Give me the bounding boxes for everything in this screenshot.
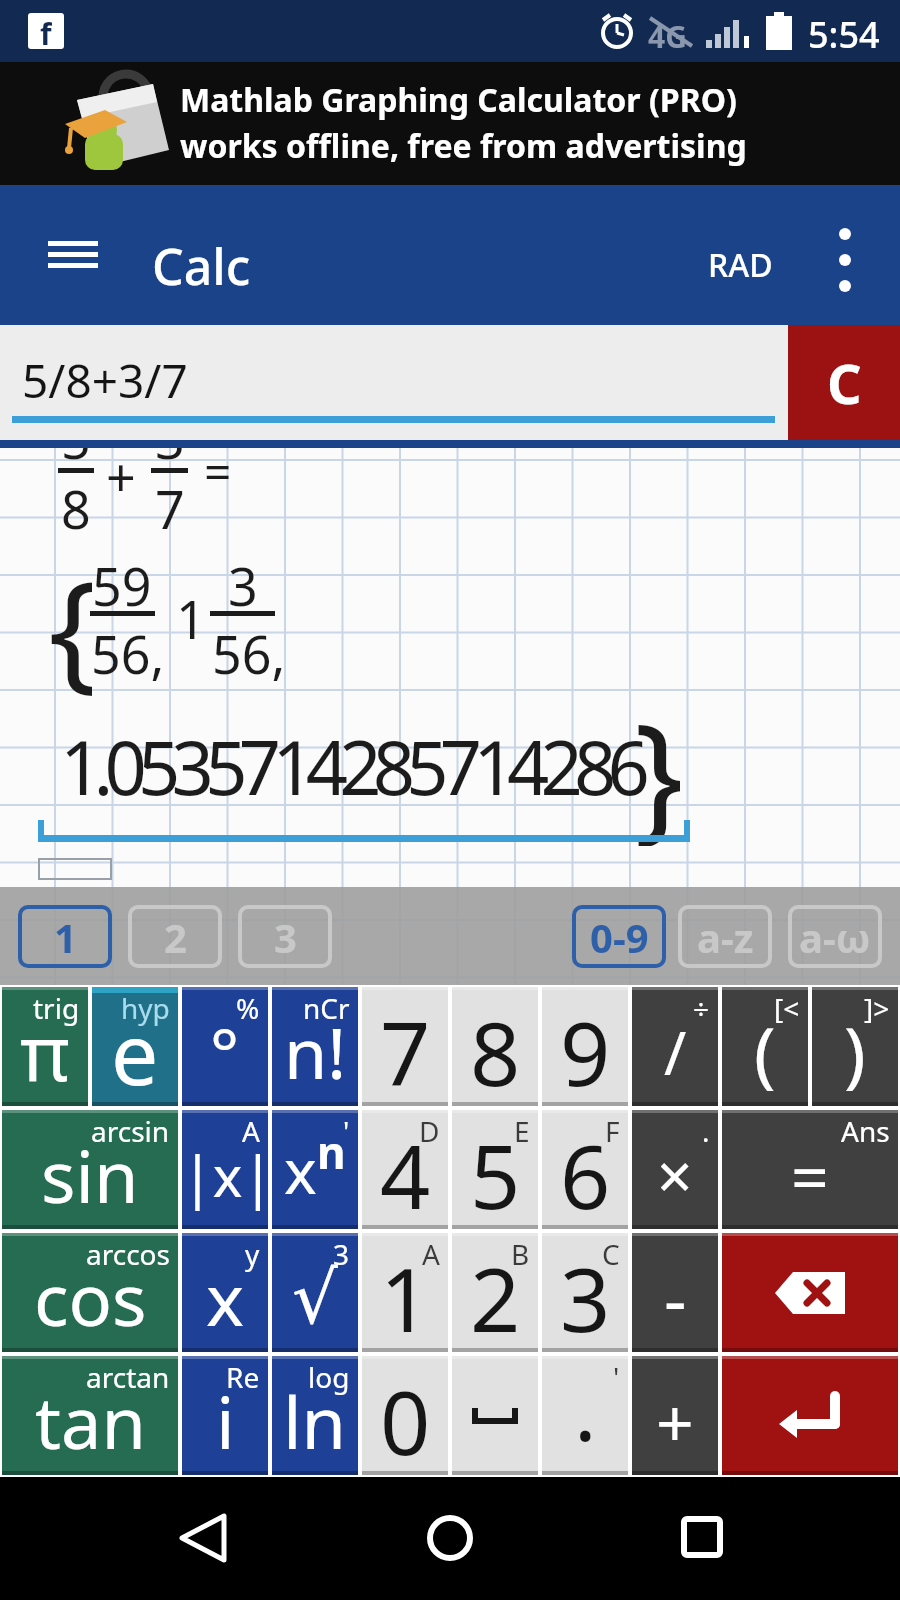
staticText: } <box>634 676 680 846</box>
button[interactable]: 9 <box>542 987 628 1106</box>
button[interactable]: [< <box>722 987 808 1106</box>
button[interactable]: Ans <box>722 1110 898 1229</box>
button[interactable]: y <box>182 1233 268 1352</box>
staticText: log <box>308 1358 350 1396</box>
staticText: 5:54 <box>808 10 880 59</box>
button[interactable]: RAD <box>690 240 790 290</box>
staticText: 5 <box>61 448 91 467</box>
staticText: 3 <box>155 448 185 467</box>
staticText: 5/8+3/7 <box>22 349 188 412</box>
button[interactable]: D <box>362 1110 448 1229</box>
button[interactable]: 3 <box>272 1233 358 1352</box>
button[interactable]: a-z <box>678 905 772 968</box>
staticText: = <box>791 1130 829 1220</box>
button[interactable]: arcsin <box>2 1110 178 1229</box>
button[interactable]: . <box>632 1110 718 1229</box>
staticText: 1 <box>176 583 202 647</box>
button[interactable] <box>30 222 116 288</box>
staticText: ]> <box>864 989 890 1027</box>
staticText: works offline, free from advertising <box>180 124 747 168</box>
button[interactable]: log <box>272 1356 358 1475</box>
button[interactable] <box>660 1497 746 1579</box>
staticText: F <box>605 1112 620 1150</box>
button[interactable]: 3 <box>238 905 332 968</box>
button[interactable]: a-ω <box>788 905 882 968</box>
staticText: 4G <box>648 16 687 57</box>
button[interactable]: C <box>542 1233 628 1352</box>
staticText: nCr <box>303 989 350 1027</box>
staticText: B <box>511 1235 530 1273</box>
button[interactable]: Mathlab Graphing Calculator (PRO) <box>0 62 900 185</box>
staticText: 7 <box>155 473 185 537</box>
button[interactable]: arccos <box>2 1233 178 1352</box>
staticText: D <box>419 1112 440 1150</box>
staticText: a-z <box>697 910 754 964</box>
button[interactable] <box>452 1356 538 1475</box>
staticText: 3 <box>228 550 258 614</box>
button[interactable]: ÷ <box>632 987 718 1106</box>
button[interactable]: ]> <box>812 987 898 1106</box>
staticText: n <box>317 1122 346 1182</box>
button[interactable]: B <box>452 1233 538 1352</box>
button[interactable]: Re <box>182 1356 268 1475</box>
button[interactable]: arctan <box>2 1356 178 1475</box>
staticText: e <box>111 995 159 1109</box>
button[interactable] <box>810 215 880 305</box>
button[interactable]: hyp <box>92 987 178 1106</box>
staticText: trig <box>33 989 80 1027</box>
button[interactable]: 2 <box>128 905 222 968</box>
button[interactable]: trig <box>2 987 88 1106</box>
staticText: + <box>656 1376 694 1466</box>
staticText: arccos <box>86 1235 170 1273</box>
button[interactable]: A <box>182 1110 268 1229</box>
staticText: = <box>204 448 232 502</box>
button[interactable]: 0 <box>362 1356 448 1475</box>
button[interactable]: nCr <box>272 987 358 1106</box>
staticText: × <box>657 1133 693 1217</box>
staticText: Re <box>226 1358 260 1396</box>
button[interactable]: 7 <box>362 987 448 1106</box>
staticText: cos <box>34 1249 147 1347</box>
staticText: 56, <box>212 618 286 682</box>
staticText: C <box>602 1235 620 1273</box>
staticText: A <box>242 1112 260 1150</box>
button[interactable]: F <box>542 1110 628 1229</box>
button[interactable]: E <box>452 1110 538 1229</box>
button[interactable]: 8 <box>452 987 538 1106</box>
staticText: sin <box>41 1126 139 1224</box>
staticText: / <box>664 1011 687 1093</box>
staticText: arcsin <box>91 1112 170 1150</box>
button[interactable] <box>722 1356 898 1475</box>
button[interactable]: ' <box>272 1110 358 1229</box>
button[interactable] <box>722 1233 898 1352</box>
button[interactable]: A <box>362 1233 448 1352</box>
staticText: 3 <box>274 910 297 964</box>
staticText: 3 <box>333 1235 350 1273</box>
staticText: 2 <box>470 1238 521 1357</box>
staticText: + <box>106 448 136 505</box>
staticText: 1 <box>54 910 77 964</box>
button[interactable]: % <box>182 987 268 1106</box>
staticText: 0 <box>380 1361 431 1480</box>
button[interactable]: ' <box>542 1356 628 1475</box>
button[interactable] <box>407 1497 493 1579</box>
button[interactable]: + <box>632 1356 718 1475</box>
button[interactable] <box>160 1497 246 1579</box>
staticText: - <box>664 1250 687 1345</box>
staticText: 7 <box>380 992 431 1111</box>
button[interactable]: 1 <box>18 905 112 968</box>
staticText: 1 <box>380 1238 431 1357</box>
staticText: ° <box>210 1005 240 1098</box>
staticText: Mathlab Graphing Calculator (PRO) <box>180 78 737 122</box>
staticText: Ans <box>841 1112 890 1150</box>
staticText: . <box>574 1351 597 1465</box>
staticText: ' <box>613 1358 620 1396</box>
staticText: 8 <box>470 992 521 1111</box>
button[interactable]: 0-9 <box>572 905 666 968</box>
staticText: . <box>702 1112 710 1150</box>
staticText: 6 <box>560 1115 611 1234</box>
button[interactable]: - <box>632 1233 718 1352</box>
staticText: a-ω <box>799 910 871 964</box>
staticText: % <box>236 989 260 1027</box>
button[interactable]: C <box>788 325 900 440</box>
